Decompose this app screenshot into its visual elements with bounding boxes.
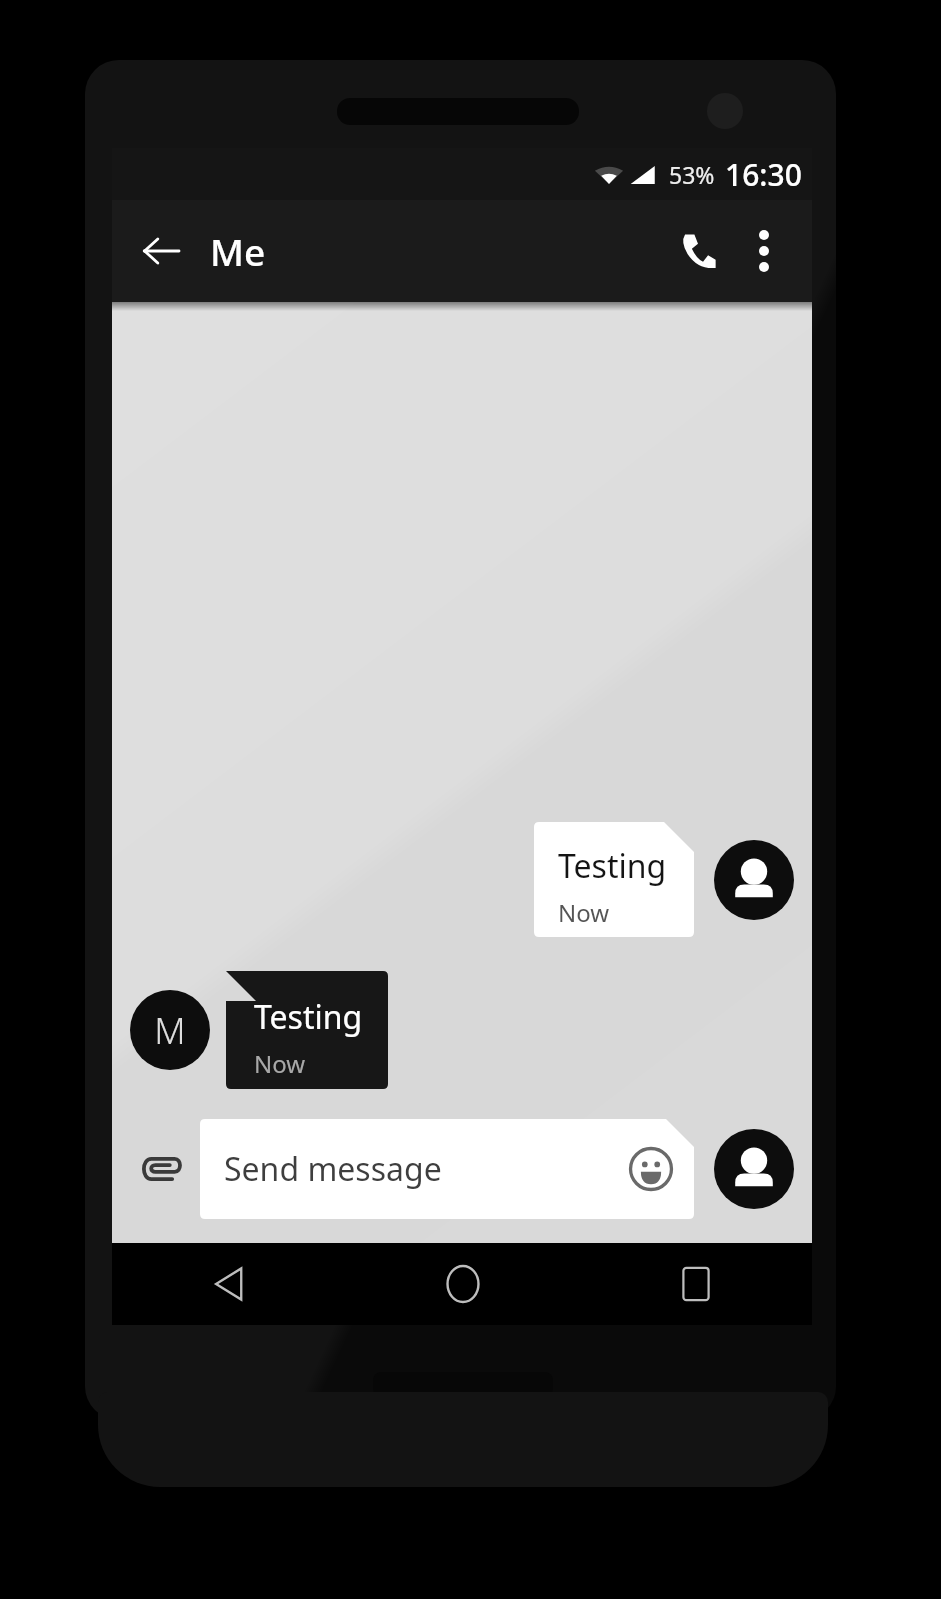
staticText: 16:30 (725, 154, 802, 195)
staticText: Send message (224, 1147, 442, 1191)
button[interactable]: More options (732, 219, 796, 283)
button[interactable]: Back (112, 1243, 346, 1325)
staticText: Testing (254, 995, 363, 1039)
button[interactable]: Attach file (132, 1140, 190, 1198)
staticText: M (154, 1006, 186, 1055)
staticText: Now (254, 1047, 306, 1080)
button[interactable]: Insert emoji (624, 1142, 678, 1196)
staticText: Me (210, 226, 266, 276)
button[interactable]: Home (346, 1243, 579, 1325)
button[interactable]: Testing (534, 822, 694, 937)
button[interactable]: Navigate up (132, 222, 190, 280)
staticText: Testing (558, 844, 667, 888)
button[interactable]: Your profile picture (714, 840, 794, 920)
button[interactable]: Testing (226, 971, 388, 1089)
staticText: Now (558, 896, 610, 929)
button[interactable]: Contact avatar (130, 990, 210, 1070)
button[interactable]: Recent apps (579, 1243, 812, 1325)
staticText: 53% (669, 159, 715, 190)
button[interactable]: Send message (200, 1119, 694, 1219)
button[interactable]: Call (666, 219, 730, 283)
button[interactable]: Your profile picture (714, 1129, 794, 1209)
